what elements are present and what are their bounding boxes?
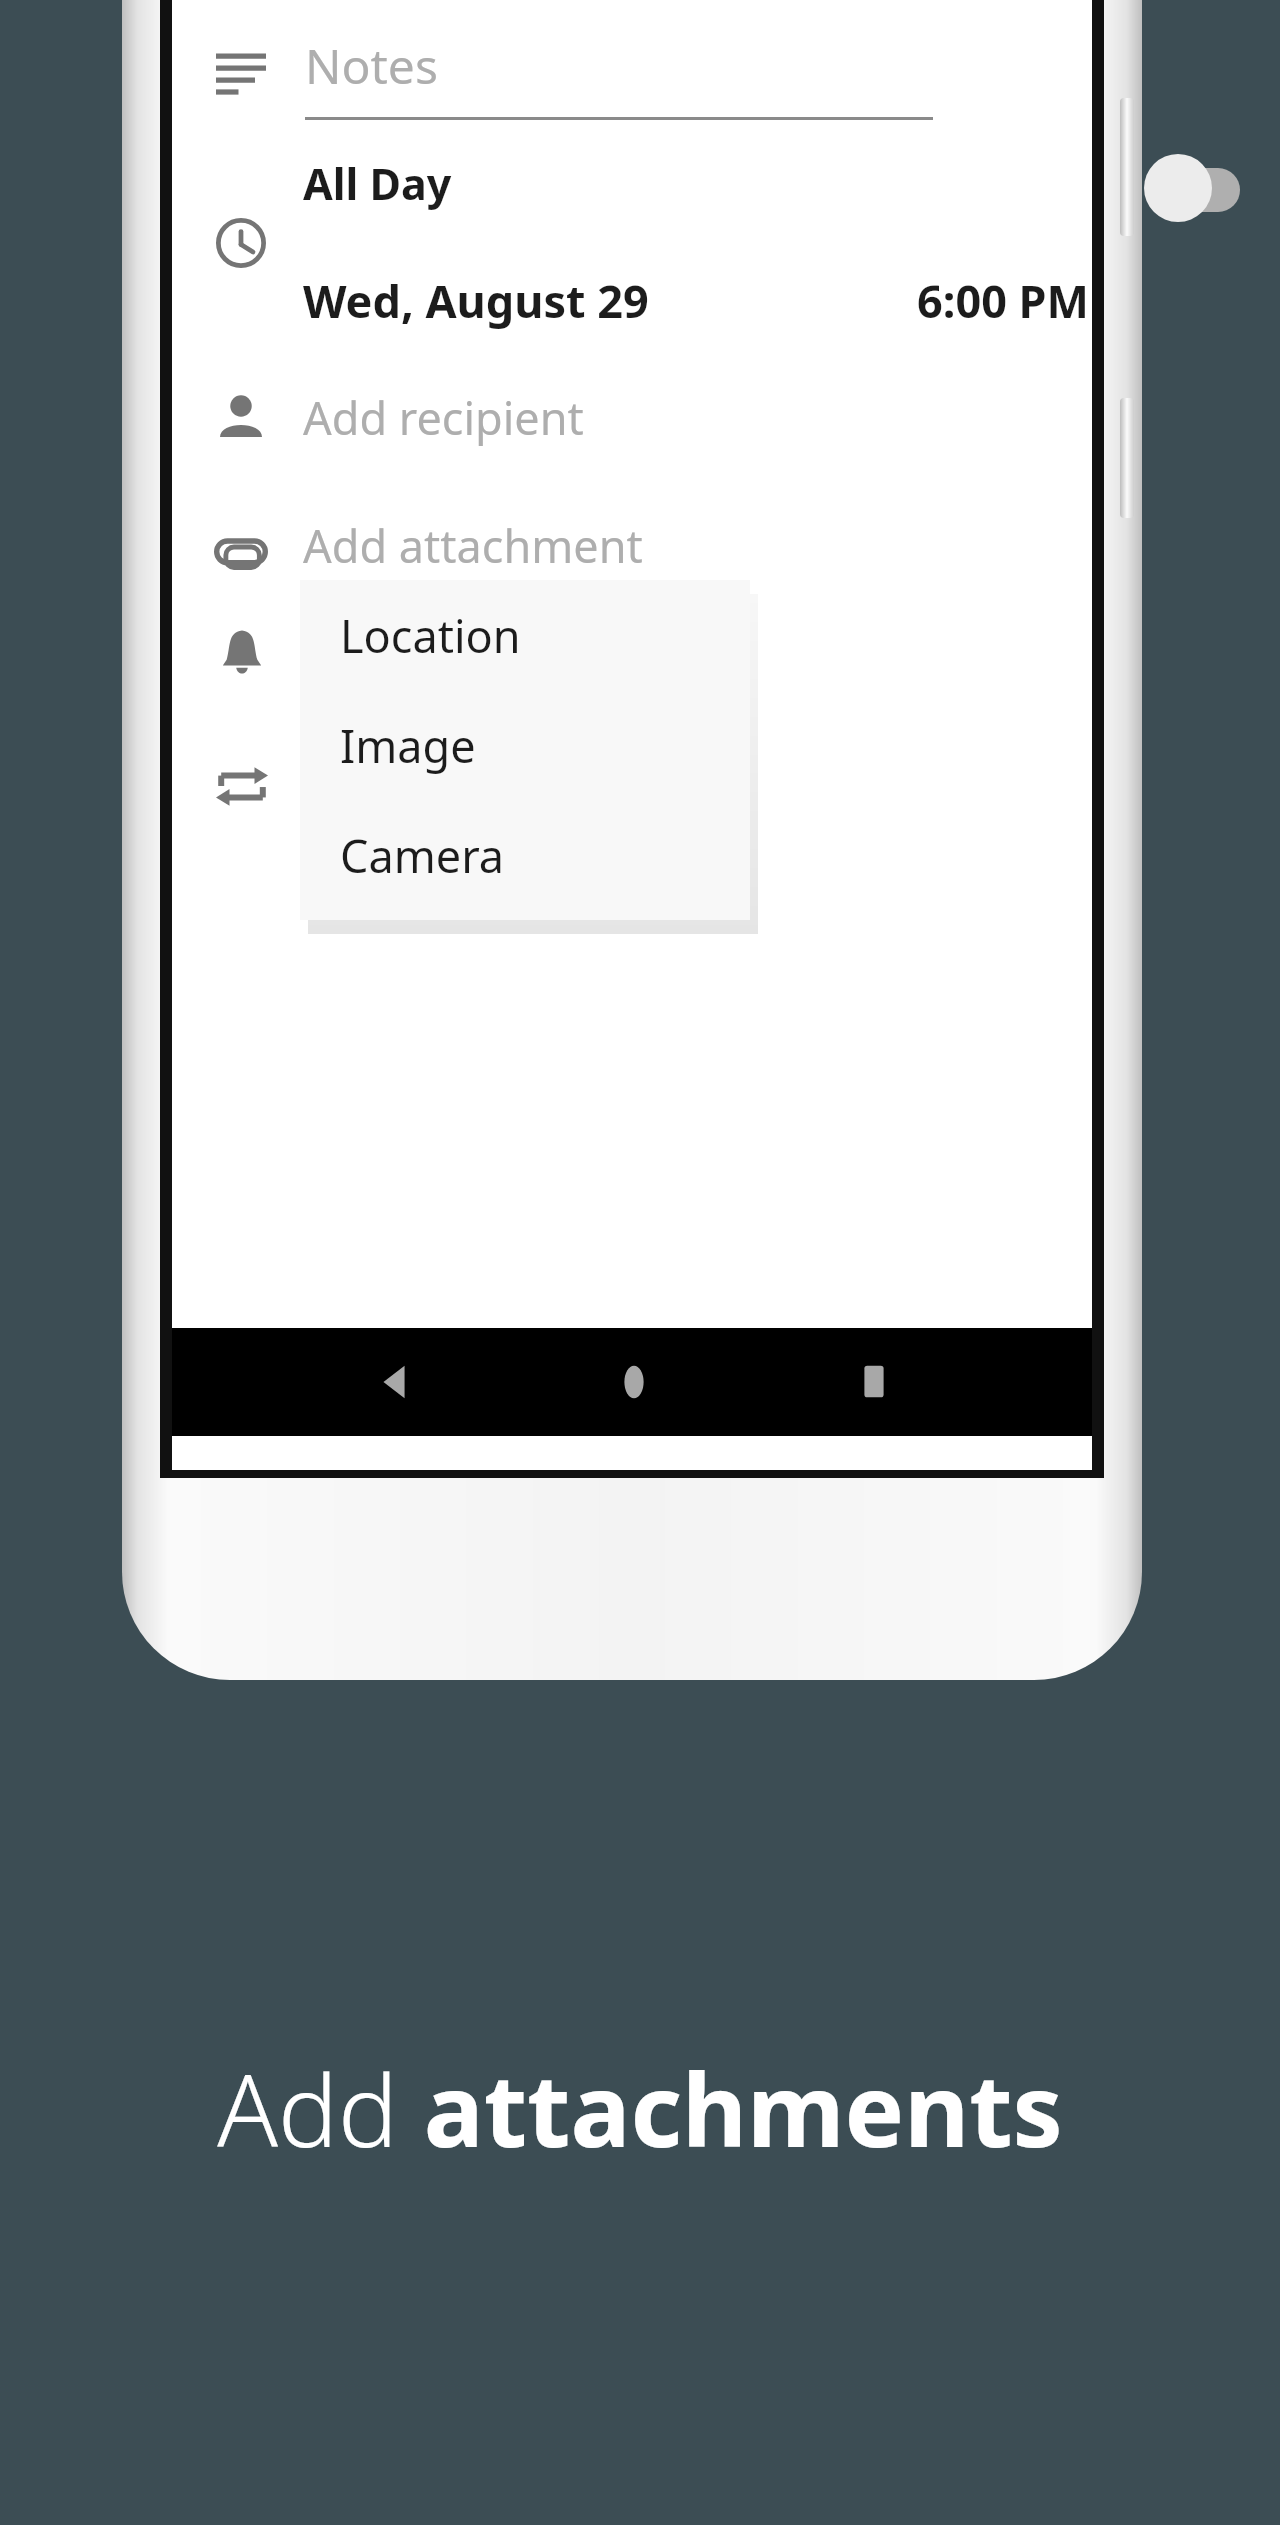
staticText: Add attachment — [303, 515, 643, 576]
staticText: Add attachments — [217, 2040, 1063, 2176]
staticText: Notes — [305, 33, 438, 98]
staticText: 6:00 PM — [917, 270, 1089, 331]
staticText: Location — [340, 605, 521, 666]
button[interactable]: Image — [300, 690, 750, 800]
button[interactable]: All Day — [172, 130, 1092, 240]
button[interactable]: Recent apps — [850, 1358, 898, 1406]
button[interactable]: Wed, August 29 — [172, 250, 1092, 360]
button[interactable]: Home — [610, 1358, 658, 1406]
button[interactable]: Add recipient — [172, 355, 1092, 483]
staticText: All Day — [303, 154, 452, 213]
button[interactable]: Back — [370, 1358, 418, 1406]
button[interactable]: Notes — [172, 0, 1092, 130]
staticText: Image — [340, 715, 476, 776]
staticText: Wed, August 29 — [303, 270, 649, 331]
button[interactable]: Location — [300, 580, 750, 690]
button[interactable]: Camera — [300, 800, 750, 910]
staticText: Camera — [340, 825, 505, 886]
staticText: Add recipient — [303, 387, 584, 448]
button[interactable]: Add attachment — [172, 483, 1092, 611]
